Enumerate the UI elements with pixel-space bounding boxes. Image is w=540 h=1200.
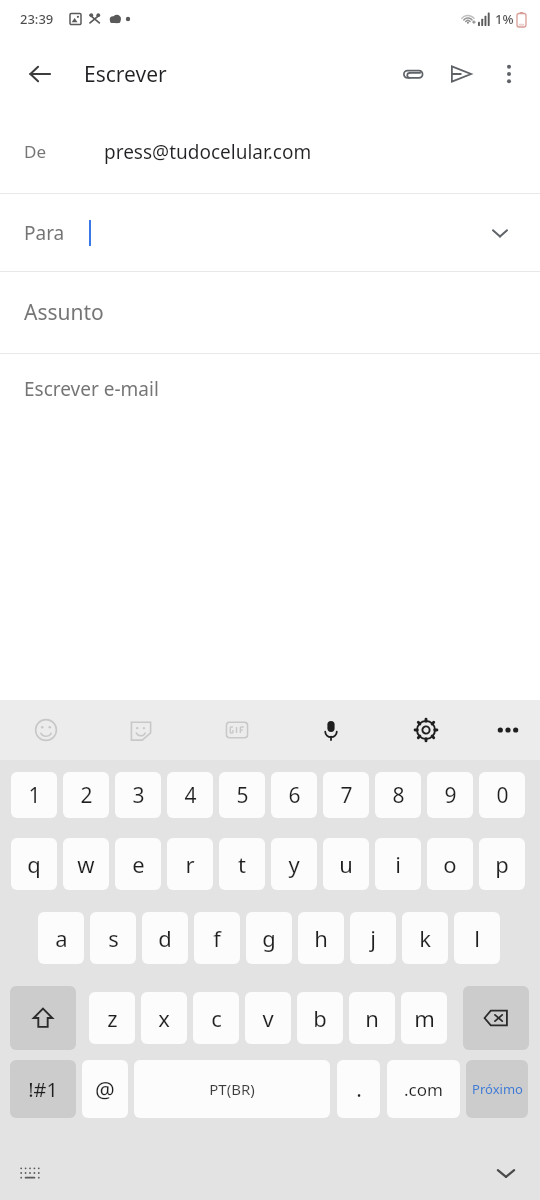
button[interactable]: e [115, 838, 161, 890]
staticText: r [185, 849, 195, 879]
button[interactable]: . [337, 1060, 380, 1118]
button[interactable]: !#1 [10, 1060, 76, 1118]
button[interactable]: g [246, 912, 292, 964]
button[interactable]: a [38, 912, 84, 964]
button[interactable]: 4 [167, 772, 213, 818]
button[interactable]: More options [485, 50, 533, 98]
staticText: f [213, 923, 221, 953]
button[interactable]: b [297, 992, 343, 1044]
staticText: h [314, 923, 328, 953]
button[interactable]: 7 [323, 772, 369, 818]
button[interactable]: @ [82, 1060, 128, 1118]
button[interactable]: Keyboard tool [115, 700, 167, 760]
staticText: a [55, 923, 68, 953]
button[interactable]: p [479, 838, 525, 890]
button[interactable]: De [0, 110, 540, 193]
button[interactable]: f [194, 912, 240, 964]
button[interactable]: c [193, 992, 239, 1044]
button[interactable]: Attach file [389, 50, 437, 98]
staticText: m [414, 1003, 435, 1033]
staticText: 6 [288, 781, 301, 810]
button[interactable]: Keyboard tool [482, 700, 534, 760]
staticText: d [158, 923, 172, 953]
button[interactable]: .com [387, 1060, 460, 1118]
staticText: i [395, 849, 401, 879]
staticText: . [356, 1075, 362, 1104]
button[interactable]: x [141, 992, 187, 1044]
button[interactable]: Próximo [466, 1060, 528, 1118]
button[interactable]: h [298, 912, 344, 964]
button[interactable]: 0 [479, 772, 525, 818]
button[interactable]: v [245, 992, 291, 1044]
staticText: c [211, 1003, 222, 1033]
staticText: 8 [392, 781, 405, 810]
staticText: 1% [495, 10, 514, 28]
staticText: @ [95, 1074, 115, 1104]
button[interactable]: l [454, 912, 500, 964]
staticText: e [132, 849, 145, 879]
staticText: w [77, 849, 95, 879]
button[interactable]: Send [437, 50, 485, 98]
button[interactable]: Keyboard layout [8, 1151, 52, 1195]
staticText: Escrever e-mail [24, 376, 159, 402]
staticText: 4 [184, 781, 197, 810]
button[interactable]: r [167, 838, 213, 890]
button[interactable]: 5 [219, 772, 265, 818]
staticText: p [495, 849, 509, 879]
staticText: Para [24, 220, 65, 246]
staticText: s [108, 923, 119, 953]
button[interactable]: q [11, 838, 57, 890]
button[interactable]: PT(BR) [134, 1060, 330, 1118]
button[interactable]: z [89, 992, 135, 1044]
staticText: De [24, 140, 46, 163]
staticText: n [365, 1003, 379, 1033]
staticText: Próximo [472, 1080, 523, 1098]
staticText: 3 [132, 781, 145, 810]
staticText: .com [404, 1078, 443, 1101]
button[interactable]: 9 [427, 772, 473, 818]
staticText: o [443, 849, 457, 879]
button[interactable]: d [142, 912, 188, 964]
button[interactable]: 1 [11, 772, 57, 818]
staticText: b [313, 1003, 327, 1033]
staticText: PT(BR) [209, 1079, 255, 1099]
staticText: x [158, 1003, 170, 1033]
button[interactable]: 2 [63, 772, 109, 818]
button[interactable]: 3 [115, 772, 161, 818]
button[interactable]: Assunto [0, 272, 540, 353]
staticText: q [27, 849, 41, 879]
staticText: v [262, 1003, 274, 1033]
button[interactable]: y [271, 838, 317, 890]
button[interactable]: w [63, 838, 109, 890]
button[interactable]: Expand recipients [476, 209, 524, 257]
button[interactable]: Backspace [463, 986, 529, 1050]
button[interactable]: j [350, 912, 396, 964]
button[interactable]: k [402, 912, 448, 964]
button[interactable]: u [323, 838, 369, 890]
button[interactable]: m [401, 992, 447, 1044]
staticText: press@tudocelular.com [104, 139, 312, 165]
staticText: 2 [80, 781, 93, 810]
button[interactable]: Keyboard tool [211, 700, 263, 760]
button[interactable]: Hide keyboard [484, 1151, 528, 1195]
button[interactable]: 6 [271, 772, 317, 818]
staticText: 23:39 [20, 10, 54, 28]
button[interactable]: i [375, 838, 421, 890]
button[interactable]: n [349, 992, 395, 1044]
staticText: l [474, 923, 480, 953]
button[interactable]: Keyboard tool [400, 700, 452, 760]
button[interactable]: Keyboard tool [305, 700, 357, 760]
button[interactable]: Keyboard tool [20, 700, 72, 760]
button[interactable]: Back [16, 50, 64, 98]
button[interactable]: 8 [375, 772, 421, 818]
button[interactable]: t [219, 838, 265, 890]
staticText: 0 [496, 781, 509, 810]
staticText: 1 [28, 781, 41, 810]
button[interactable]: Escrever e-mail [0, 354, 540, 424]
button[interactable]: s [90, 912, 136, 964]
button[interactable]: Para [0, 194, 540, 271]
button[interactable]: Shift [10, 986, 76, 1050]
button[interactable]: o [427, 838, 473, 890]
staticText: Assunto [24, 298, 104, 327]
staticText: !#1 [28, 1076, 58, 1103]
